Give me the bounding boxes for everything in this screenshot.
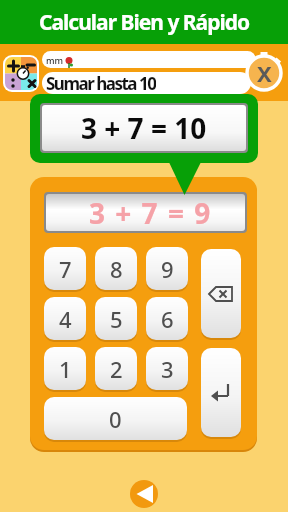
button[interactable] (201, 249, 241, 338)
staticText: 0 (109, 404, 122, 434)
staticText: 6 (161, 304, 174, 334)
button[interactable]: 3 (146, 347, 188, 390)
staticText: 7 (59, 254, 72, 284)
staticText: mm (46, 54, 64, 66)
staticText: Sumar hasta 10 (46, 72, 156, 94)
button[interactable]: X (245, 56, 284, 90)
button[interactable]: 7 (44, 247, 86, 290)
staticText: X (257, 58, 272, 88)
staticText: 3 (161, 354, 174, 384)
button[interactable]: 2 (95, 347, 137, 390)
button[interactable]: 1 (44, 347, 86, 390)
button[interactable] (130, 480, 158, 508)
button[interactable] (201, 348, 241, 437)
button[interactable]: 5 (95, 297, 137, 340)
button[interactable]: 0 (44, 397, 187, 440)
staticText: 3 + 7 = 9 (89, 194, 212, 231)
staticText: 9 (161, 254, 174, 284)
staticText: 4 (59, 304, 72, 334)
button[interactable]: 9 (146, 247, 188, 290)
button[interactable]: mm (42, 51, 256, 68)
staticText: 2 (110, 354, 123, 384)
staticText: 5 (110, 304, 123, 334)
button[interactable]: 6 (146, 297, 188, 340)
button[interactable]: 4 (44, 297, 86, 340)
staticText: 1 (59, 354, 72, 384)
button[interactable]: 8 (95, 247, 137, 290)
button[interactable]: Sumar hasta 10 (42, 72, 251, 94)
staticText: 3 + 7 = 10 (81, 109, 207, 147)
staticText: 8 (110, 254, 123, 284)
staticText: Calcular Bien y Rápido (39, 8, 250, 37)
